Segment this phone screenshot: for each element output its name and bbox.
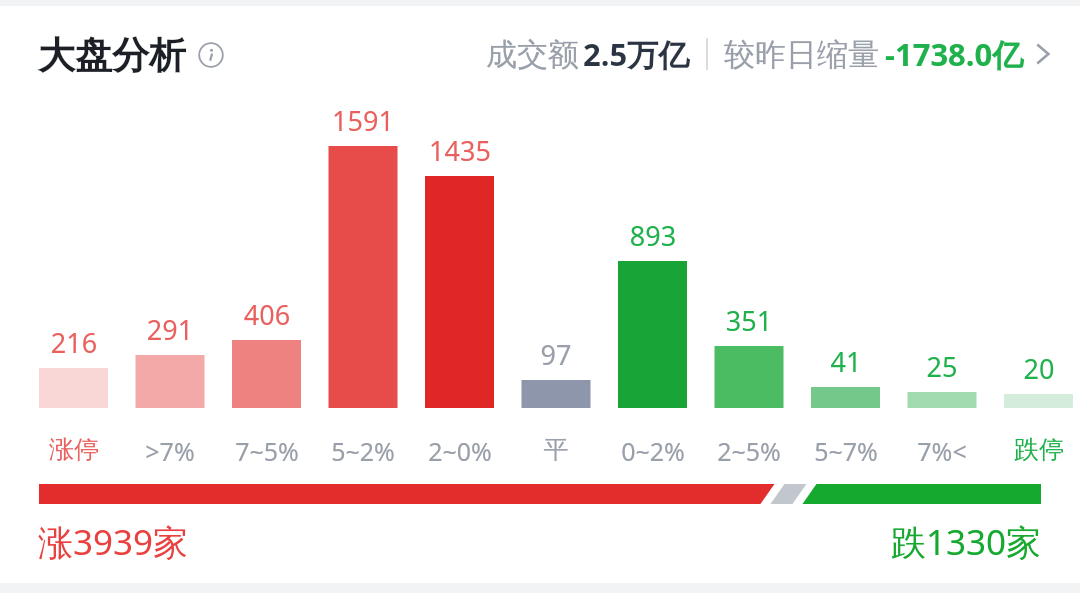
staticText: 5~2% bbox=[303, 434, 423, 468]
button[interactable]: 大盘分析 bbox=[38, 28, 224, 82]
other: More bbox=[1034, 39, 1052, 69]
staticText: 216 bbox=[14, 324, 134, 361]
staticText: 406 bbox=[207, 296, 327, 333]
staticText: 平 bbox=[496, 434, 616, 465]
staticText: 25 bbox=[882, 348, 1002, 385]
staticText: 2~0% bbox=[400, 434, 520, 468]
staticText: 2.5万亿 bbox=[583, 33, 690, 75]
staticText: 2~5% bbox=[689, 434, 809, 468]
staticText: 跌停 bbox=[979, 434, 1080, 465]
button[interactable]: 成交额 bbox=[486, 26, 1052, 82]
staticText: 7~5% bbox=[207, 434, 327, 468]
staticText: 0~2% bbox=[593, 434, 713, 468]
staticText: 291 bbox=[110, 311, 230, 348]
other: Info bbox=[198, 42, 224, 68]
staticText: 7%< bbox=[882, 434, 1002, 468]
staticText: 351 bbox=[689, 302, 809, 339]
staticText: 跌1330家 bbox=[891, 518, 1042, 566]
staticText: 大盘分析 bbox=[38, 32, 186, 79]
staticText: 涨停 bbox=[14, 434, 134, 465]
staticText: 893 bbox=[593, 217, 713, 254]
staticText: -1738.0亿 bbox=[885, 33, 1024, 75]
staticText: 5~7% bbox=[786, 434, 906, 468]
staticText: 较昨日缩量 bbox=[724, 35, 879, 74]
staticText: 20 bbox=[979, 350, 1080, 387]
staticText: 1435 bbox=[400, 132, 520, 169]
staticText: 41 bbox=[786, 343, 906, 380]
staticText: 1591 bbox=[303, 102, 423, 139]
staticText: 成交额 bbox=[486, 35, 579, 74]
staticText: 涨3939家 bbox=[38, 518, 189, 566]
staticText: >7% bbox=[110, 434, 230, 468]
staticText: 97 bbox=[496, 336, 616, 373]
